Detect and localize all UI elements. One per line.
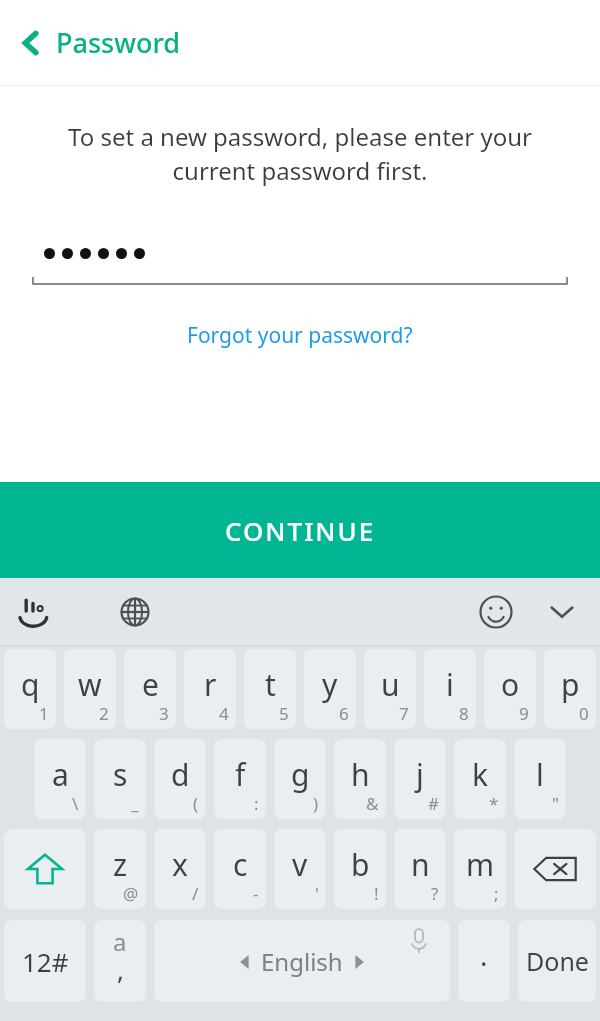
staticText: t (265, 664, 276, 705)
button[interactable]: English (154, 920, 450, 1002)
staticText: 3 (159, 702, 169, 725)
staticText: To set a new password, please enter your… (46, 120, 554, 187)
button[interactable]: u (364, 649, 416, 729)
button[interactable]: p (544, 649, 596, 729)
staticText: o (501, 664, 520, 705)
button[interactable]: Hide keyboard (534, 584, 590, 640)
button[interactable]: q (4, 649, 56, 729)
staticText: u (381, 664, 400, 705)
staticText: b (351, 844, 370, 885)
button[interactable]: Back (0, 0, 600, 85)
button[interactable]: Keyboard settings (6, 584, 62, 640)
staticText: r (204, 664, 217, 705)
button[interactable]: . (458, 920, 510, 1002)
staticText: f (235, 754, 246, 795)
button[interactable]: x (154, 829, 206, 909)
button[interactable]: Emoji (468, 584, 524, 640)
staticText: 8 (459, 702, 469, 725)
staticText: @ (123, 882, 139, 905)
staticText: a (52, 754, 69, 795)
button[interactable]: j (394, 739, 446, 819)
staticText: s (113, 754, 128, 795)
staticText: l (536, 754, 544, 795)
staticText: q (21, 664, 40, 705)
staticText: g (291, 754, 310, 795)
staticText: / (192, 882, 199, 905)
staticText: ( (193, 792, 199, 815)
staticText: a (113, 925, 127, 958)
staticText: 5 (279, 702, 289, 725)
staticText: 9 (519, 702, 529, 725)
button[interactable]: w (64, 649, 116, 729)
staticText: 7 (399, 702, 409, 725)
staticText: & (366, 792, 379, 815)
button[interactable]: Done (518, 920, 596, 1002)
button[interactable]: l (514, 739, 566, 819)
staticText: n (411, 844, 430, 885)
button[interactable]: v (274, 829, 326, 909)
staticText: English (261, 945, 343, 978)
staticText: ; (494, 882, 499, 905)
button[interactable]: i (424, 649, 476, 729)
staticText: ? (431, 882, 439, 905)
staticText: m (466, 844, 495, 885)
staticText: \ (72, 792, 79, 815)
button[interactable]: Forgot your password? (175, 315, 425, 356)
button[interactable]: d (154, 739, 206, 819)
staticText: . (480, 936, 488, 974)
button[interactable]: n (394, 829, 446, 909)
staticText: 1 (39, 702, 49, 725)
staticText: 0 (579, 702, 589, 725)
staticText: ! (374, 882, 379, 905)
staticText: * (489, 792, 499, 815)
button[interactable]: Backspace (514, 829, 596, 909)
staticText: : (254, 792, 259, 815)
staticText: j (416, 754, 424, 795)
button[interactable]: Shift (4, 829, 86, 909)
button[interactable]: z (94, 829, 146, 909)
button[interactable]: a (34, 739, 86, 819)
button[interactable]: f (214, 739, 266, 819)
staticText: i (446, 664, 454, 705)
staticText: ) (313, 792, 319, 815)
staticText: ' (315, 882, 319, 905)
staticText: # (428, 792, 439, 815)
staticText: Password (56, 24, 181, 61)
button[interactable]: g (274, 739, 326, 819)
staticText: 6 (339, 702, 349, 725)
staticText: Done (526, 944, 589, 978)
staticText: z (113, 844, 128, 885)
button[interactable] (32, 227, 568, 287)
staticText: 12# (22, 944, 69, 979)
button[interactable]: CONTINUE (0, 482, 600, 578)
button[interactable]: s (94, 739, 146, 819)
staticText: - (253, 882, 259, 905)
button[interactable]: Change language (107, 584, 163, 640)
staticText: w (78, 664, 102, 705)
button[interactable]: y (304, 649, 356, 729)
staticText: y (322, 664, 338, 705)
button[interactable]: k (454, 739, 506, 819)
staticText: 2 (99, 702, 109, 725)
button[interactable]: c (214, 829, 266, 909)
staticText: p (561, 664, 580, 705)
staticText: Forgot your password? (187, 321, 413, 350)
staticText: _ (131, 792, 139, 815)
staticText: 4 (219, 702, 229, 725)
button[interactable]: a (94, 920, 146, 1002)
staticText: " (552, 792, 559, 815)
button[interactable]: 12# (4, 920, 86, 1002)
staticText: x (172, 844, 188, 885)
button[interactable]: m (454, 829, 506, 909)
button[interactable]: b (334, 829, 386, 909)
staticText: c (233, 844, 248, 885)
button[interactable]: o (484, 649, 536, 729)
button[interactable]: h (334, 739, 386, 819)
staticText: CONTINUE (225, 513, 376, 548)
button[interactable]: e (124, 649, 176, 729)
staticText: e (142, 664, 159, 705)
button[interactable]: t (244, 649, 296, 729)
staticText: , (117, 952, 124, 987)
staticText: d (171, 754, 190, 795)
button[interactable]: r (184, 649, 236, 729)
